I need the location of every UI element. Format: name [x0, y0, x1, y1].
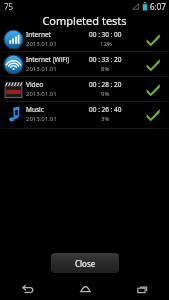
staticText: 00 : 28 : 20: [89, 80, 122, 89]
staticText: Close: [75, 258, 96, 269]
staticText: 2013.01.01: [26, 115, 57, 123]
button[interactable]: Video: [0, 77, 169, 101]
button[interactable]: Internet (WiFi): [0, 52, 169, 76]
staticText: Video: [26, 80, 44, 89]
staticText: Music: [26, 105, 44, 114]
staticText: 12%: [100, 40, 112, 48]
staticText: 6:07: [150, 1, 166, 12]
staticText: 00 : 26 : 40: [89, 105, 122, 114]
staticText: 00 : 33 : 20: [89, 55, 122, 64]
staticText: Internet (Mob.): [26, 30, 70, 39]
staticText: 00 : 30 : 00: [89, 30, 122, 39]
button[interactable]: Close: [51, 253, 119, 273]
staticText: Internet (WiFi): [26, 55, 70, 64]
button[interactable]: Recents: [131, 278, 153, 300]
button[interactable]: Internet (Mob.): [0, 27, 169, 51]
staticText: 8%: [101, 65, 110, 73]
staticText: 2013.01.01: [26, 65, 57, 73]
staticText: Completed tests: [42, 13, 127, 27]
button[interactable]: Back: [16, 278, 38, 300]
staticText: 2013.01.01: [26, 40, 57, 48]
button[interactable]: Music: [0, 102, 169, 126]
staticText: 2013.01.01: [26, 90, 57, 98]
staticText: 9%: [101, 90, 110, 98]
staticText: 75: [4, 1, 14, 12]
button[interactable]: Home: [74, 278, 96, 300]
staticText: 3%: [101, 115, 110, 123]
